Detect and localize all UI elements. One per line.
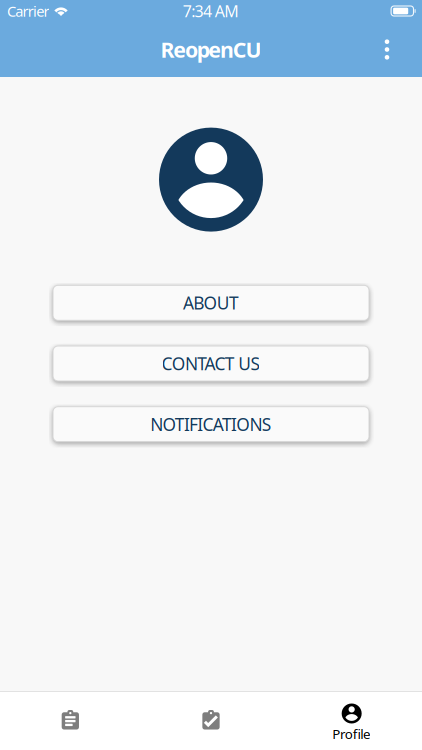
button[interactable]: CONTACT US [53,346,369,381]
button[interactable]: Completed [141,692,281,750]
staticText: Profile [332,725,371,743]
staticText: 7:34 AM [183,0,239,22]
staticText: NOTIFICATIONS [150,413,272,436]
staticText: ABOUT [183,291,239,314]
button[interactable]: Profile [281,692,422,750]
staticText: Carrier [7,1,49,21]
button[interactable]: More options [365,25,409,73]
button[interactable]: NOTIFICATIONS [53,407,369,442]
button[interactable]: Surveys [0,692,141,750]
button[interactable]: ABOUT [53,285,369,320]
staticText: ReopenCU [160,35,261,64]
staticText: CONTACT US [162,352,260,375]
